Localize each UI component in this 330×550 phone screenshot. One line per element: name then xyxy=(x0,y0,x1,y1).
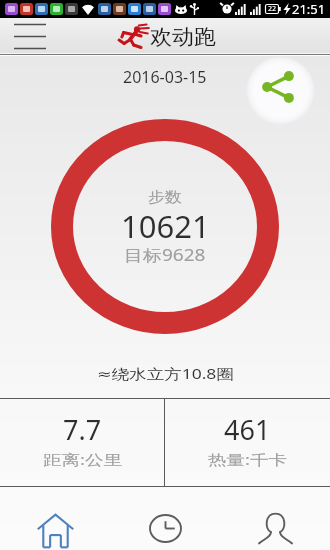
staticText: ≈绕水立方10.8圈 xyxy=(97,363,234,383)
button[interactable]: 461 xyxy=(165,399,330,486)
button[interactable]: Profile xyxy=(220,487,330,550)
staticText: 22 xyxy=(268,4,277,14)
staticText: 10621 xyxy=(121,205,210,247)
button[interactable]: History xyxy=(110,487,220,550)
staticText: 7.7 xyxy=(63,411,102,448)
button[interactable]: Share xyxy=(246,56,315,125)
button[interactable]: Home xyxy=(0,487,110,550)
staticText: 距离:公里 xyxy=(43,450,122,469)
staticText: 欢动跑 xyxy=(150,24,216,50)
staticText: 2016-03-15 xyxy=(123,66,207,88)
staticText: 461 xyxy=(224,411,271,448)
staticText: 21:51 xyxy=(292,0,326,18)
staticText: 目标9628 xyxy=(124,244,206,266)
staticText: 热量:千卡 xyxy=(208,450,287,469)
button[interactable]: Menu xyxy=(10,19,50,52)
staticText: 步数 xyxy=(148,189,182,206)
button[interactable]: 7.7 xyxy=(0,399,164,486)
